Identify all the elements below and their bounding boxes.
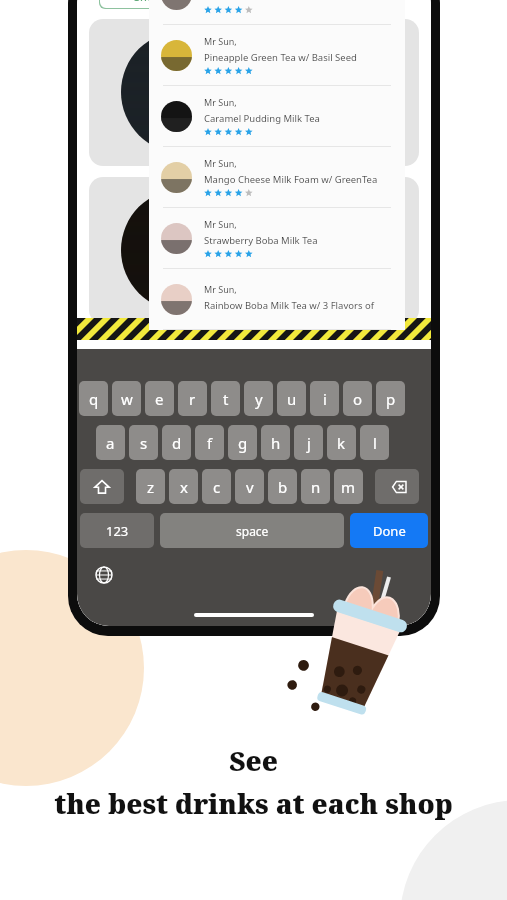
staticText: c [213, 477, 221, 497]
staticText: d [172, 433, 182, 453]
button[interactable]: e [145, 381, 174, 416]
button[interactable]: v [235, 469, 264, 504]
button[interactable]: n [301, 469, 330, 504]
staticText: z [147, 477, 155, 497]
button[interactable]: l [360, 425, 389, 460]
staticText: Mr Sun, [204, 283, 237, 295]
staticText: Mr Sun, [204, 35, 237, 47]
staticText: x [180, 477, 188, 497]
staticText: space [236, 523, 269, 539]
button[interactable]: p [376, 381, 405, 416]
staticText: Rainbow Boba Milk Tea w/ 3 Flavors of [204, 299, 374, 312]
button[interactable]: Mr Sun, [149, 269, 405, 329]
staticText: m [341, 477, 356, 497]
staticText: Mr Sun, [204, 96, 237, 108]
button[interactable]: Mr Sun, [149, 0, 405, 24]
staticText: Caramel Pudding Milk Tea [204, 112, 320, 125]
button[interactable]: Mr Sun, [149, 208, 405, 268]
staticText: 123 [106, 522, 129, 540]
staticText: b [278, 477, 288, 497]
button[interactable]: Mr Sun, [149, 86, 405, 146]
button[interactable]: Mr Sun, [149, 25, 405, 85]
staticText: e [155, 389, 164, 409]
button[interactable]: m [334, 469, 363, 504]
button[interactable]: j [294, 425, 323, 460]
staticText: Shop [134, 0, 161, 4]
button[interactable]: space [160, 513, 344, 548]
staticText: Strawberry Boba Milk Tea [204, 234, 318, 247]
staticText: n [311, 477, 321, 497]
staticText: v [246, 477, 254, 497]
staticText: Mango Cheese Milk Foam w/ GreenTea [204, 173, 378, 186]
button[interactable]: 123 [80, 513, 154, 548]
staticText: g [238, 433, 248, 453]
staticText: p [386, 389, 396, 409]
staticText: y [255, 389, 263, 409]
button[interactable]: g [228, 425, 257, 460]
staticText: w [121, 389, 133, 409]
button[interactable]: c [202, 469, 231, 504]
button[interactable]: Change keyboard language [89, 560, 119, 590]
button[interactable]: x [169, 469, 198, 504]
staticText: s [140, 433, 148, 453]
staticText: t [223, 389, 229, 409]
button[interactable]: o [343, 381, 372, 416]
button[interactable]: w [112, 381, 141, 416]
staticText: the best drinks at each shop [54, 785, 453, 822]
button[interactable]: t [211, 381, 240, 416]
button[interactable]: z [136, 469, 165, 504]
staticText: Mr Sun, [204, 157, 237, 169]
staticText: a [106, 433, 115, 453]
button[interactable]: d [162, 425, 191, 460]
button[interactable] [89, 177, 419, 324]
button[interactable]: Shop [99, 0, 195, 9]
button[interactable]: Mr Sun, [149, 147, 405, 207]
staticText: o [353, 389, 363, 409]
button[interactable]: a [96, 425, 125, 460]
button[interactable]: u [277, 381, 306, 416]
button[interactable]: b [268, 469, 297, 504]
staticText: k [337, 433, 346, 453]
staticText: i [323, 389, 327, 409]
staticText: l [373, 433, 377, 453]
staticText: See [229, 742, 278, 779]
staticText: h [271, 433, 281, 453]
staticText: j [307, 433, 311, 453]
button[interactable]: Shift [80, 469, 124, 504]
button[interactable]: h [261, 425, 290, 460]
staticText: f [207, 433, 213, 453]
button[interactable]: k [327, 425, 356, 460]
button[interactable]: Backspace [375, 469, 419, 504]
staticText: Mr Sun, [204, 218, 237, 230]
staticText: r [189, 389, 196, 409]
button[interactable]: y [244, 381, 273, 416]
staticText: Done [373, 522, 406, 540]
staticText: Pineapple Green Tea w/ Basil Seed [204, 51, 357, 64]
staticText: u [287, 389, 297, 409]
button[interactable]: q [79, 381, 108, 416]
button[interactable]: Done [350, 513, 428, 548]
button[interactable]: i [310, 381, 339, 416]
button[interactable]: r [178, 381, 207, 416]
button[interactable]: f [195, 425, 224, 460]
button[interactable]: s [129, 425, 158, 460]
staticText: q [89, 389, 99, 409]
button[interactable] [89, 19, 419, 166]
